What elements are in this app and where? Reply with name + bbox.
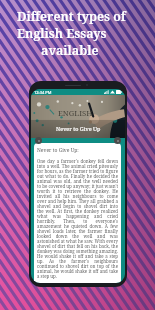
staticText: Different types of — [17, 8, 155, 25]
staticText: available — [41, 42, 155, 59]
staticText: 12:34 PM — [34, 90, 52, 95]
staticText: English Essays — [17, 25, 155, 42]
staticText: One day a farmer's donkey fell down into… — [37, 158, 118, 280]
staticText: ENGLISH — [58, 108, 93, 119]
staticText: Never to Give Up — [56, 125, 101, 132]
staticText: Never to Give Up: — [37, 147, 79, 154]
button[interactable]: Next article — [114, 137, 121, 144]
button[interactable]: Previous article — [35, 137, 42, 144]
